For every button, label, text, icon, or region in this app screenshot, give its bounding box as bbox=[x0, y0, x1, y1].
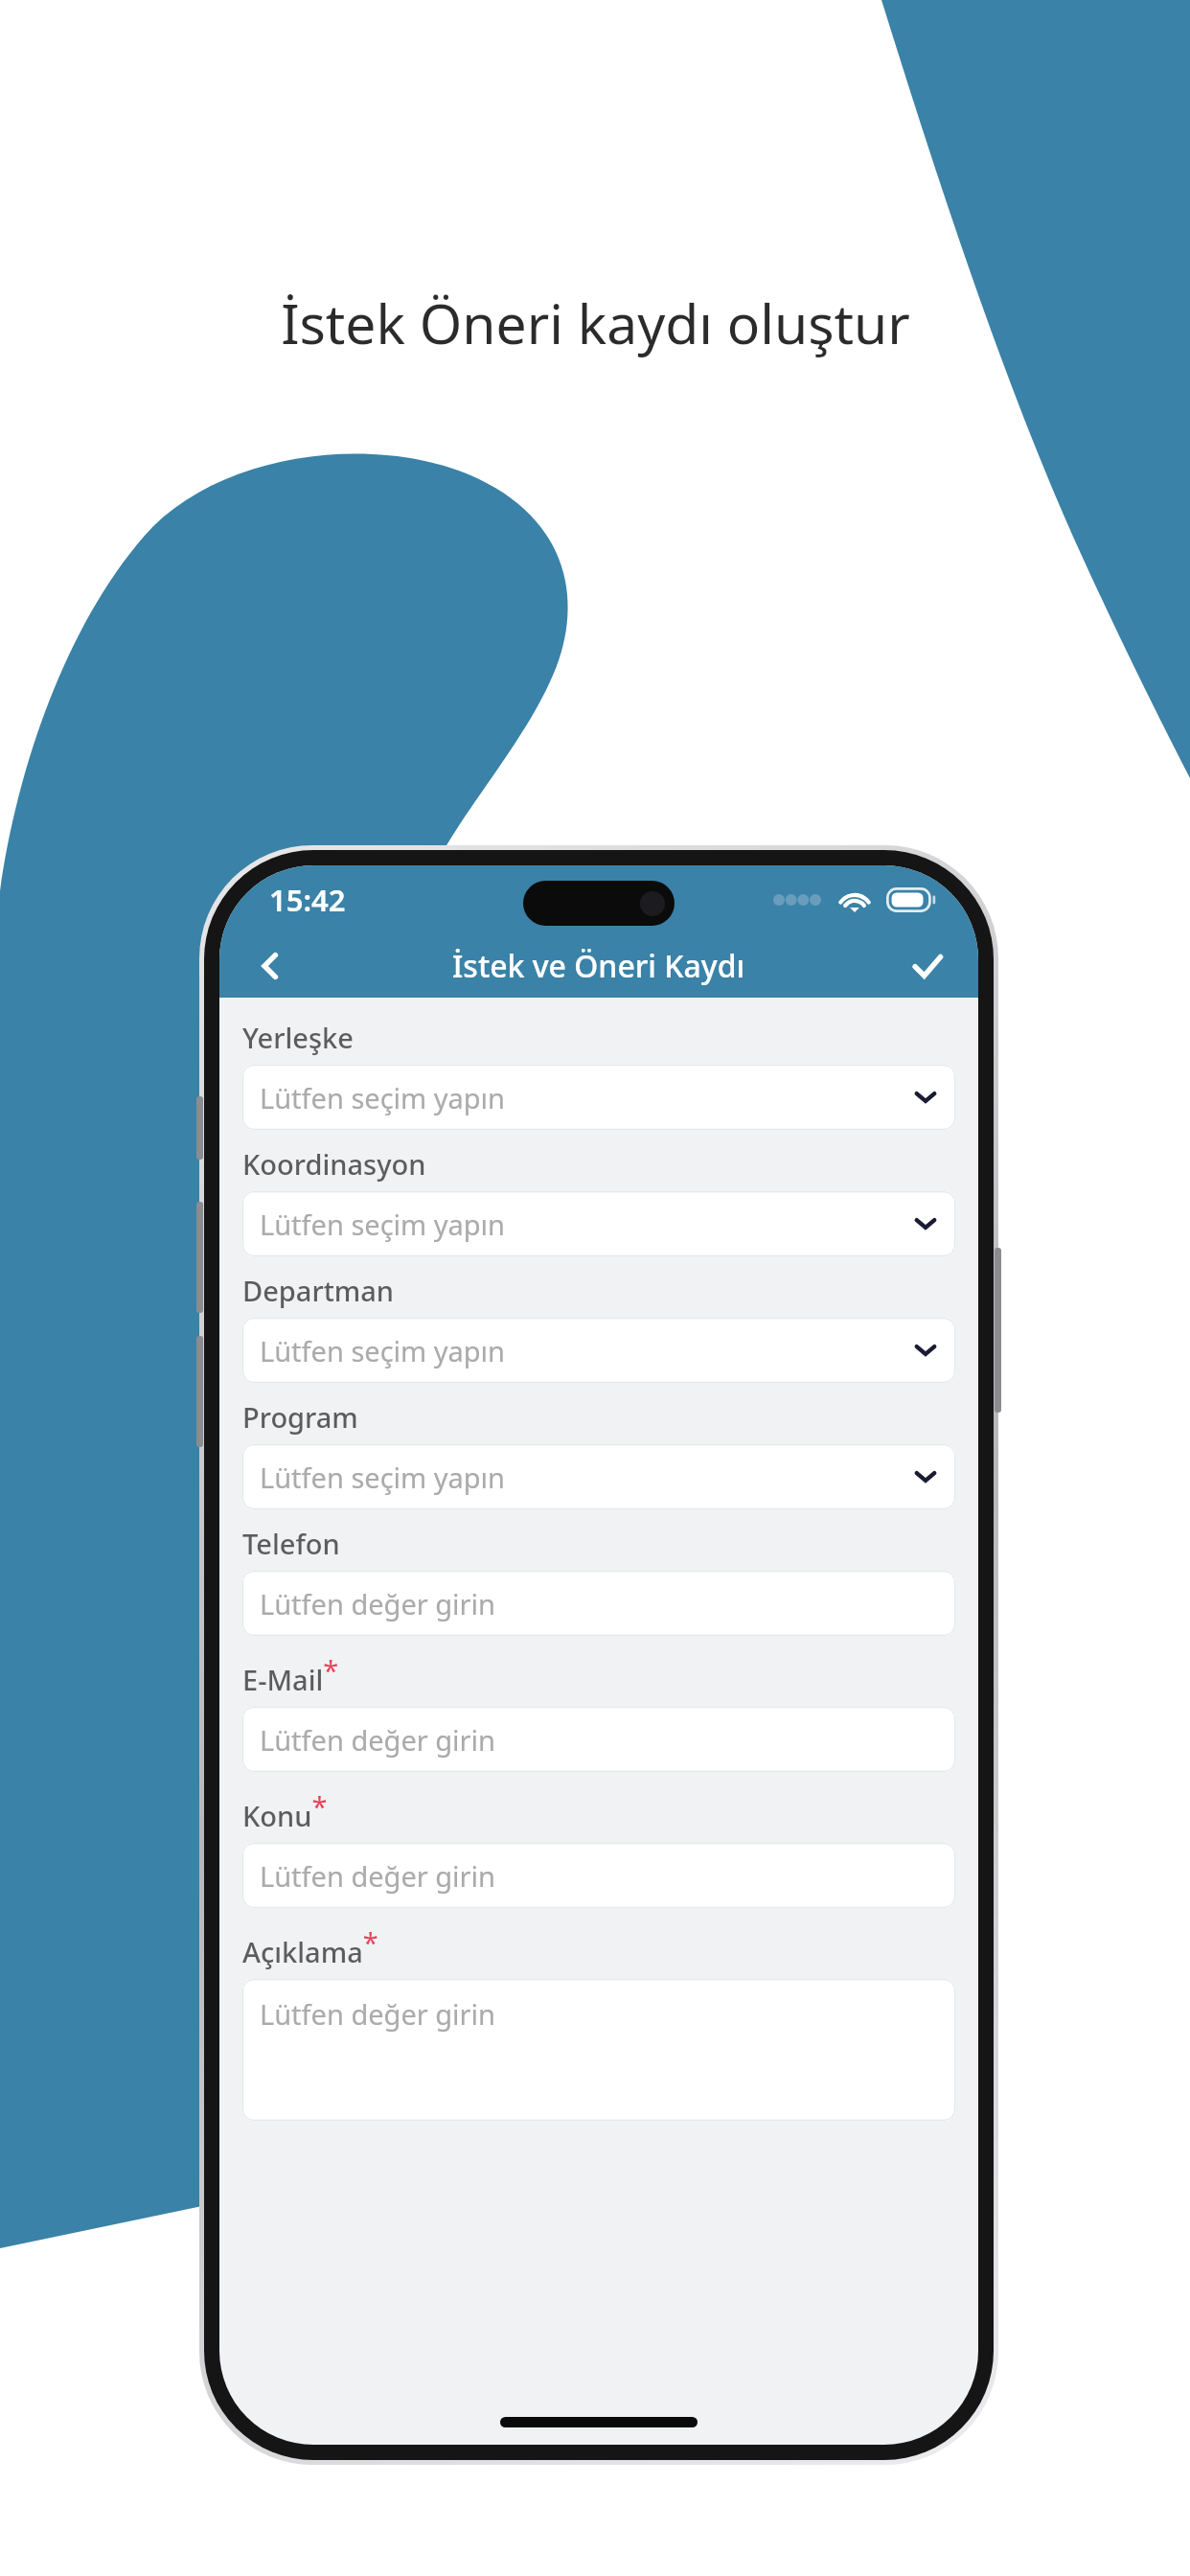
button[interactable]: Lütfen seçim yapın bbox=[242, 1444, 955, 1509]
button[interactable]: Lütfen değer girin bbox=[242, 1571, 955, 1636]
staticText: Yerleşke bbox=[242, 1019, 354, 1056]
staticText: Lütfen seçim yapın bbox=[260, 1459, 505, 1496]
staticText: Lütfen değer girin bbox=[260, 1857, 495, 1895]
button[interactable]: Save bbox=[902, 940, 953, 992]
button[interactable]: Lütfen değer girin bbox=[242, 1843, 955, 1908]
staticText: E-Mail* bbox=[242, 1651, 339, 1698]
staticText: Departman bbox=[242, 1272, 395, 1309]
button[interactable]: Lütfen değer girin bbox=[242, 1979, 955, 2121]
staticText: Lütfen seçim yapın bbox=[260, 1079, 505, 1116]
staticText: 15:42 bbox=[269, 880, 346, 920]
staticText: Lütfen değer girin bbox=[260, 1721, 495, 1759]
button[interactable]: Lütfen seçim yapın bbox=[242, 1318, 955, 1383]
staticText: Lütfen değer girin bbox=[260, 1585, 495, 1622]
staticText: Konu* bbox=[242, 1787, 328, 1834]
staticText: Lütfen seçim yapın bbox=[260, 1332, 505, 1369]
staticText: Lütfen değer girin bbox=[260, 1995, 495, 2033]
staticText: Telefon bbox=[242, 1525, 340, 1562]
staticText: Program bbox=[242, 1398, 358, 1436]
staticText: Koordinasyon bbox=[242, 1145, 426, 1183]
staticText: İstek Öneri kaydı oluştur bbox=[281, 286, 910, 360]
button[interactable]: Lütfen değer girin bbox=[242, 1707, 955, 1772]
button[interactable]: Lütfen seçim yapın bbox=[242, 1065, 955, 1130]
button[interactable]: Lütfen seçim yapın bbox=[242, 1191, 955, 1256]
button[interactable]: Back bbox=[244, 940, 296, 992]
staticText: Lütfen seçim yapın bbox=[260, 1206, 505, 1243]
staticText: İstek ve Öneri Kaydı bbox=[452, 945, 745, 987]
staticText: Açıklama* bbox=[242, 1923, 378, 1970]
